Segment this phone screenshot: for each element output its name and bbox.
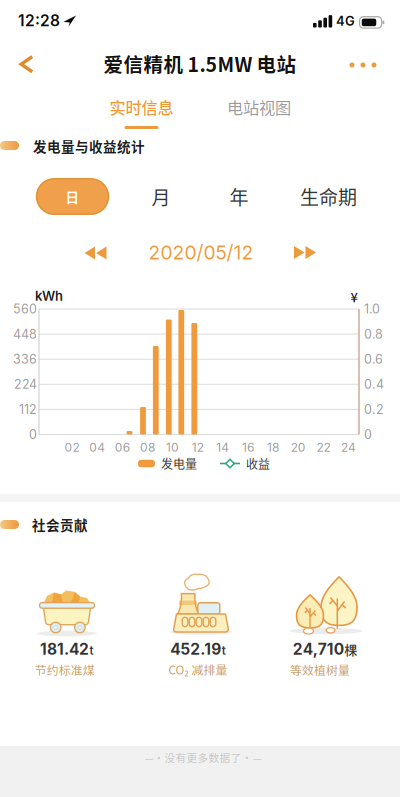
- staticText: CO₂ 减排量: [168, 661, 227, 678]
- staticText: 181.42: [40, 640, 89, 658]
- staticText: ¥: [350, 287, 357, 306]
- staticText: 0.6: [364, 352, 383, 367]
- button[interactable]: Previous day: [84, 246, 106, 259]
- staticText: 2020/05/12: [148, 241, 253, 264]
- staticText: 112: [19, 402, 37, 417]
- staticText: 月: [151, 183, 170, 210]
- staticText: 年: [229, 183, 248, 210]
- staticText: 爱信精机 1.5MW 电站: [103, 49, 296, 78]
- staticText: kWh: [35, 288, 63, 304]
- staticText: 节约标准煤: [35, 661, 95, 678]
- button[interactable]: 生命期: [300, 183, 357, 210]
- staticText: 发电量: [161, 455, 197, 472]
- staticText: 16: [242, 440, 254, 455]
- staticText: 14: [216, 440, 229, 455]
- staticText: 06: [115, 440, 130, 455]
- staticText: t: [89, 643, 93, 657]
- staticText: 560: [13, 301, 37, 316]
- button[interactable]: More: [344, 49, 388, 79]
- staticText: 22: [316, 440, 330, 455]
- staticText: 1.0: [364, 301, 380, 316]
- staticText: 0.8: [364, 326, 383, 342]
- button[interactable]: 月: [151, 183, 170, 210]
- staticText: 0: [29, 427, 37, 442]
- staticText: 发电量与收益统计: [33, 136, 145, 156]
- button[interactable]: 实时信息: [109, 95, 173, 119]
- staticText: 等效植树量: [290, 661, 350, 678]
- staticText: 0.4: [364, 377, 384, 392]
- staticText: 24: [341, 440, 356, 455]
- staticText: 18: [267, 440, 279, 455]
- staticText: 日: [65, 187, 79, 206]
- staticText: 24,710: [293, 640, 344, 658]
- button[interactable]: Next day: [294, 246, 316, 259]
- staticText: 20: [291, 440, 306, 455]
- staticText: 收益: [246, 455, 270, 472]
- button[interactable]: Back: [0, 42, 44, 86]
- staticText: 224: [14, 377, 37, 392]
- staticText: 448: [13, 326, 37, 342]
- staticText: 10: [166, 440, 179, 455]
- staticText: 04: [89, 440, 105, 455]
- staticText: 实时信息: [109, 95, 173, 119]
- staticText: 电站视图: [227, 95, 291, 119]
- staticText: 12: [192, 440, 204, 455]
- staticText: 4G: [336, 13, 355, 29]
- staticText: —•没有更多数据了•—: [144, 750, 261, 765]
- staticText: 棵: [344, 640, 357, 658]
- staticText: 336: [13, 352, 37, 367]
- staticText: 0.2: [364, 402, 384, 417]
- staticText: 12:28: [18, 11, 60, 30]
- staticText: 社会贡献: [32, 515, 88, 534]
- button[interactable]: 日: [36, 179, 108, 214]
- staticText: 0: [364, 427, 372, 442]
- button[interactable]: 电站视图: [227, 95, 291, 119]
- button[interactable]: 年: [229, 183, 248, 210]
- staticText: 452.19: [170, 640, 221, 658]
- staticText: 02: [64, 440, 79, 455]
- staticText: 生命期: [300, 183, 357, 210]
- staticText: t: [222, 643, 226, 657]
- staticText: 08: [140, 440, 155, 455]
